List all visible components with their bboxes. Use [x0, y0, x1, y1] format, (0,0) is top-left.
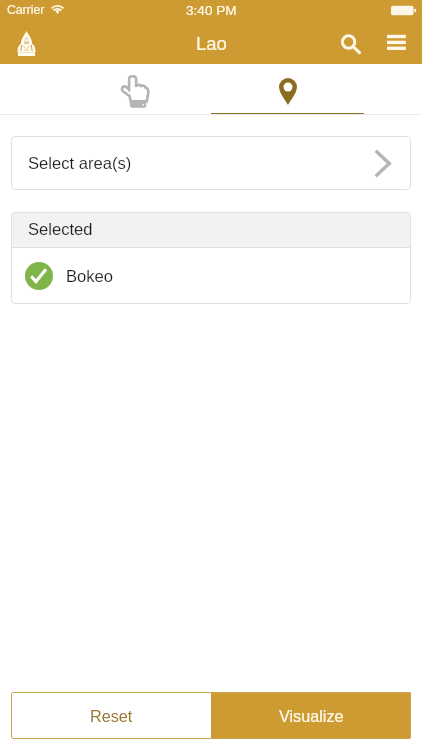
staticText: Reset	[90, 707, 133, 725]
staticText: Select area(s)	[28, 154, 132, 173]
button[interactable]: Menu	[375, 22, 418, 64]
button[interactable]: Pick areas	[58, 64, 211, 114]
staticText: Lao	[196, 33, 227, 54]
staticText: 3:40 PM	[186, 3, 237, 18]
staticText: Bokeo	[66, 267, 114, 286]
button[interactable]: Pick on map	[211, 64, 364, 114]
button[interactable]: Reset	[11, 692, 211, 739]
button[interactable]: Search	[327, 22, 370, 64]
staticText: Selected	[28, 220, 93, 239]
button[interactable]: Select area(s)	[11, 136, 411, 190]
button[interactable]: Visualize	[211, 692, 411, 739]
staticText: Carrier	[7, 3, 45, 17]
button[interactable]: Home	[17, 31, 36, 56]
button[interactable]: Bokeo	[11, 248, 411, 304]
staticText: Visualize	[279, 707, 344, 725]
